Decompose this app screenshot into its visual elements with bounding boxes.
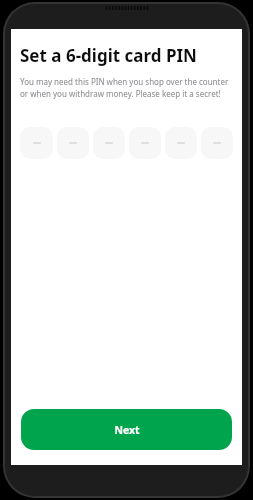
button[interactable] <box>129 127 161 159</box>
button[interactable] <box>165 127 197 159</box>
button[interactable] <box>57 127 89 159</box>
staticText: Next <box>114 423 140 437</box>
button[interactable] <box>201 127 233 159</box>
button[interactable]: Next <box>21 409 232 450</box>
button[interactable] <box>93 127 125 159</box>
button[interactable] <box>20 127 53 159</box>
staticText: Set a 6-digit card PIN <box>20 44 197 67</box>
staticText: You may need this PIN when you shop over… <box>20 76 231 99</box>
